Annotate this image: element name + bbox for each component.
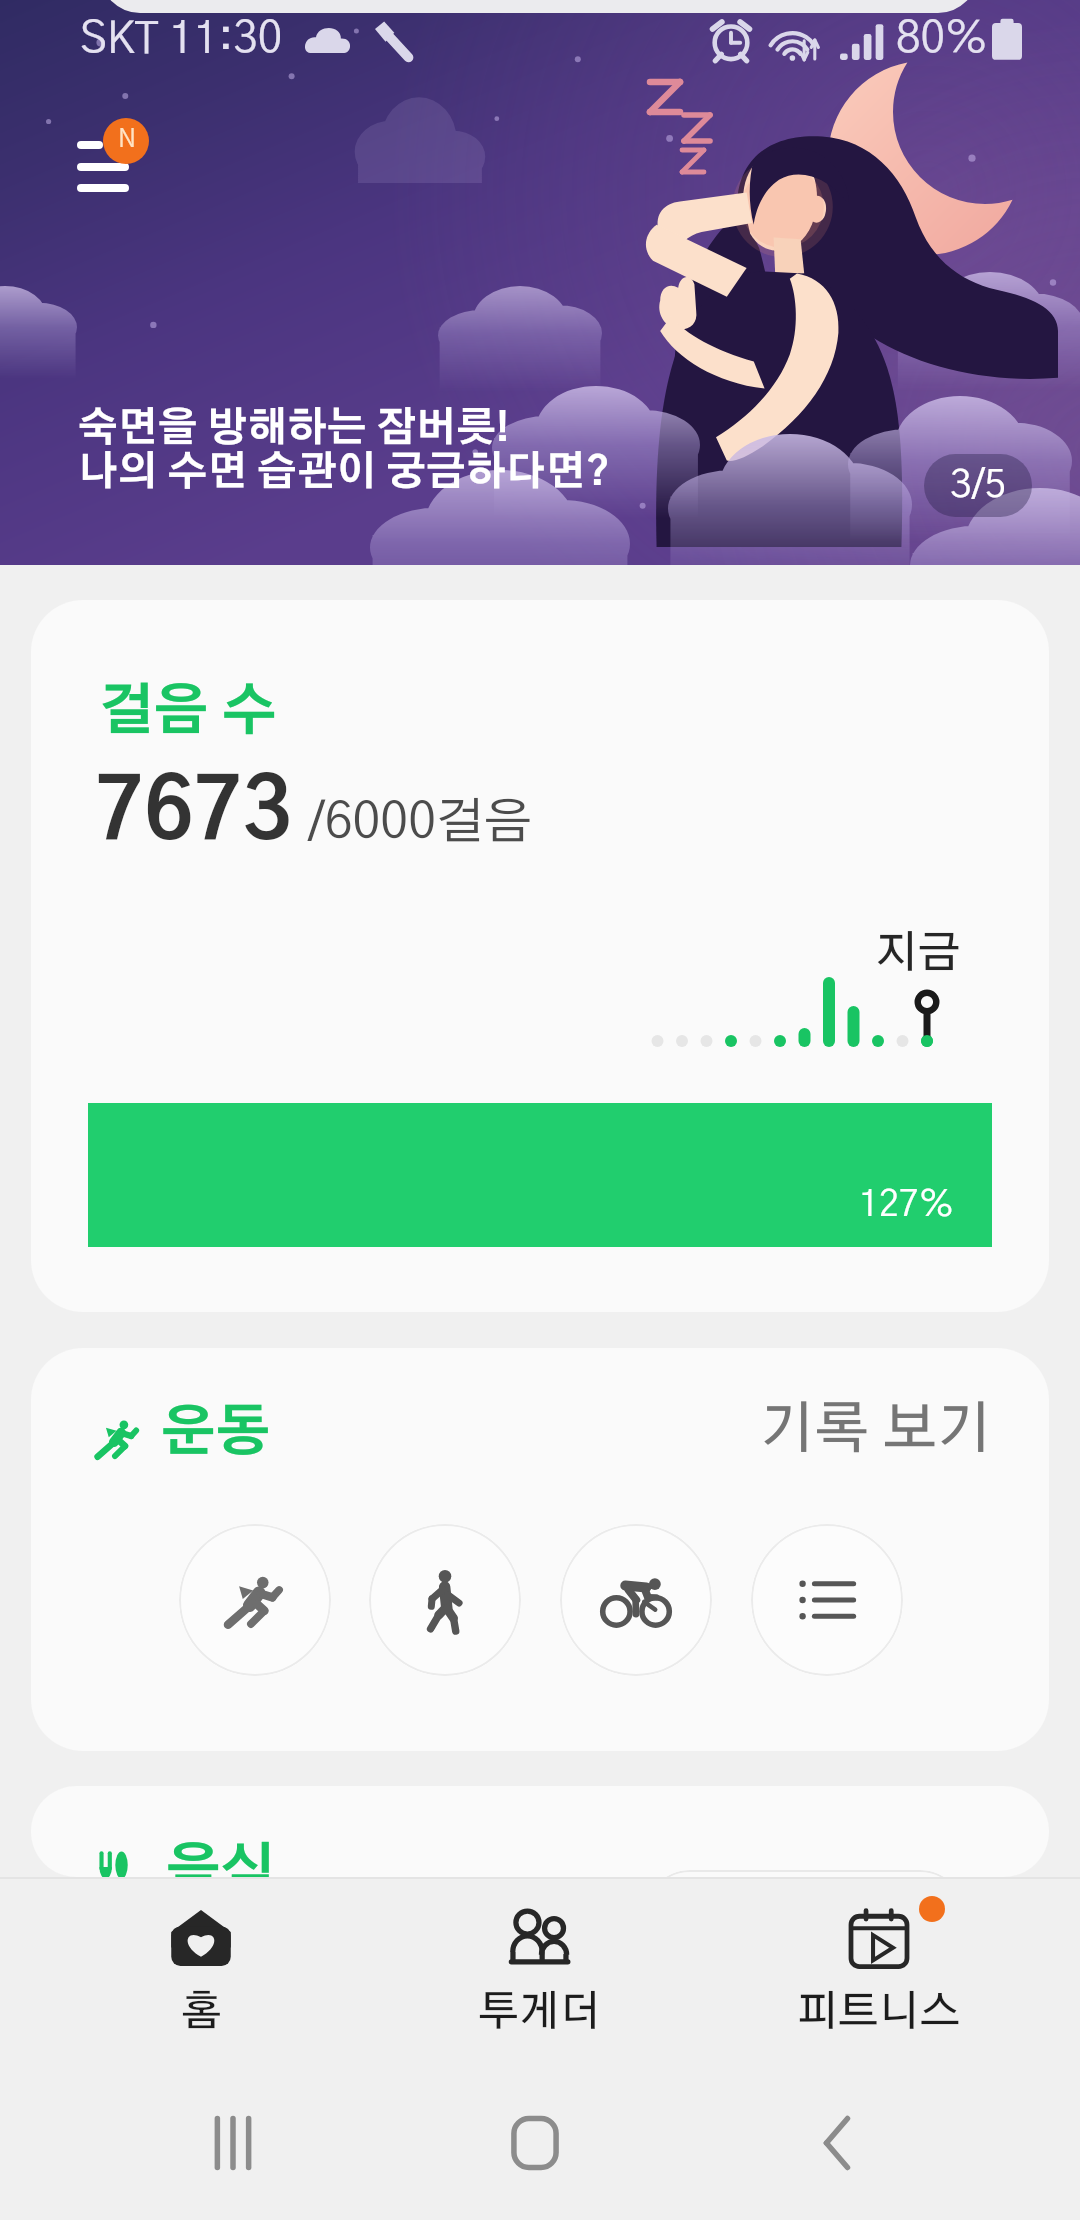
button[interactable] — [645, 1870, 965, 1877]
staticText: 127% — [859, 1187, 954, 1223]
staticText: 홈 — [181, 1991, 222, 2033]
button[interactable]: 피트니스 — [709, 1877, 1049, 2065]
button[interactable]: 3/5 — [924, 454, 1032, 517]
staticText: 3/5 — [950, 466, 1007, 505]
button[interactable]: Recents — [158, 2065, 308, 2220]
button[interactable]: More activities — [751, 1524, 903, 1676]
button[interactable]: 홈 — [31, 1877, 371, 2065]
button[interactable]: 걸음 수 — [31, 600, 1049, 1312]
staticText: 투게더 — [478, 1991, 601, 2033]
staticText: 운동 — [161, 1406, 271, 1461]
staticText: 7673 — [95, 772, 292, 856]
staticText: 기록 보기 — [760, 1402, 992, 1458]
staticText: 나의 수면 습관이 궁금하다면? — [78, 453, 610, 493]
button[interactable]: Cycle — [560, 1524, 712, 1676]
staticText: SKT 11:30 — [80, 18, 283, 62]
staticText: 음식 — [166, 1844, 276, 1877]
staticText: 지금 — [875, 932, 961, 976]
button[interactable]: Run — [179, 1524, 331, 1676]
button[interactable]: Menu — [62, 108, 172, 204]
button[interactable]: Home — [460, 2065, 610, 2220]
staticText: 숙면을 방해하는 잠버릇! — [78, 409, 510, 449]
button[interactable]: Back — [763, 2065, 913, 2220]
staticText: N — [118, 127, 137, 152]
button[interactable]: 투게더 — [369, 1877, 709, 2065]
button[interactable]: 음식 — [31, 1786, 1049, 1877]
staticText: 걸음 수 — [99, 685, 277, 740]
button[interactable]: Walk — [369, 1524, 521, 1676]
staticText: 80% — [896, 18, 988, 62]
staticText: 피트니스 — [797, 1991, 961, 2033]
staticText: /6000걸음 — [308, 798, 533, 848]
button[interactable]: 운동 — [31, 1348, 1049, 1751]
